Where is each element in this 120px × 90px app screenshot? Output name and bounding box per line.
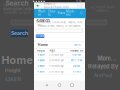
staticText: Search: [5, 0, 28, 7]
button[interactable]: Back: [45, 84, 48, 87]
staticText: Relayed By: [70, 49, 83, 52]
staticText: Search: [11, 30, 28, 36]
staticText: More...: [97, 55, 116, 62]
button[interactable]: 436976: [37, 70, 44, 73]
button[interactable]: BitFury: [72, 70, 80, 73]
staticText: Stats: [57, 11, 64, 15]
staticText: ss, block hash,: [90, 5, 115, 9]
staticText: AntPool: [72, 53, 81, 56]
staticText: ⋮: [79, 3, 83, 8]
staticText: Home: [1, 53, 32, 66]
button[interactable]: Home: [58, 84, 61, 87]
button[interactable]: Wallet: [38, 10, 46, 16]
staticText: Relayed By: [88, 63, 118, 70]
staticText: Height: [37, 49, 45, 52]
staticText: https://blockchain.info: [44, 2, 69, 9]
staticText: Home: [38, 42, 48, 47]
staticText: 436977: [37, 65, 44, 67]
staticText: 436978: [37, 59, 44, 62]
staticText: 13 minutes ago: [48, 59, 63, 62]
button[interactable]: Search: [36, 34, 44, 38]
button[interactable]: BTCC Pool: [70, 59, 82, 62]
staticText: AntPool: [94, 73, 112, 78]
staticText: 17 minutes ago: [48, 65, 63, 67]
button[interactable]: Search: [11, 29, 28, 37]
staticText: BTCC Pool: [70, 59, 82, 62]
staticText: More...: [74, 43, 83, 46]
staticText: Charts: [48, 10, 56, 16]
button[interactable]: 436977: [37, 65, 44, 67]
staticText: BitFury: [72, 70, 80, 73]
button[interactable]: 436979: [37, 53, 44, 56]
staticText: 436974: [4, 77, 21, 82]
staticText: 2 minutes ago: [49, 53, 63, 56]
staticText: Search: [36, 18, 49, 23]
staticText: Markets: [66, 10, 75, 16]
staticText: 12:30: [76, 0, 81, 3]
staticText: Search: [36, 35, 44, 38]
staticText: Q: [80, 11, 82, 15]
button[interactable]: 436978: [37, 59, 44, 62]
button[interactable]: Markets: [66, 10, 75, 16]
button[interactable]: F2Pool: [73, 65, 80, 67]
staticText: You may enter a block height, addre: [2, 3, 33, 11]
staticText: Wallet: [38, 10, 46, 16]
staticText: address.: [96, 8, 110, 13]
button[interactable]: Stats: [57, 11, 64, 15]
staticText: transaction hash, hash160, or ipv4 addre…: [38, 25, 81, 28]
button[interactable]: More...: [74, 43, 83, 46]
staticText: 22 minutes ago: [48, 70, 63, 73]
button[interactable]: Charts: [48, 10, 56, 16]
staticText: Age: [49, 49, 54, 52]
staticText: 436976: [37, 70, 44, 73]
staticText: F2Pool: [73, 65, 80, 67]
staticText: You may enter a block height, address, b…: [37, 21, 82, 27]
staticText: transaction hash, hash160, or ipv4: [4, 6, 32, 15]
staticText: 436979: [37, 53, 44, 56]
staticText: Height: [5, 68, 21, 73]
button[interactable]: AntPool: [72, 53, 81, 56]
